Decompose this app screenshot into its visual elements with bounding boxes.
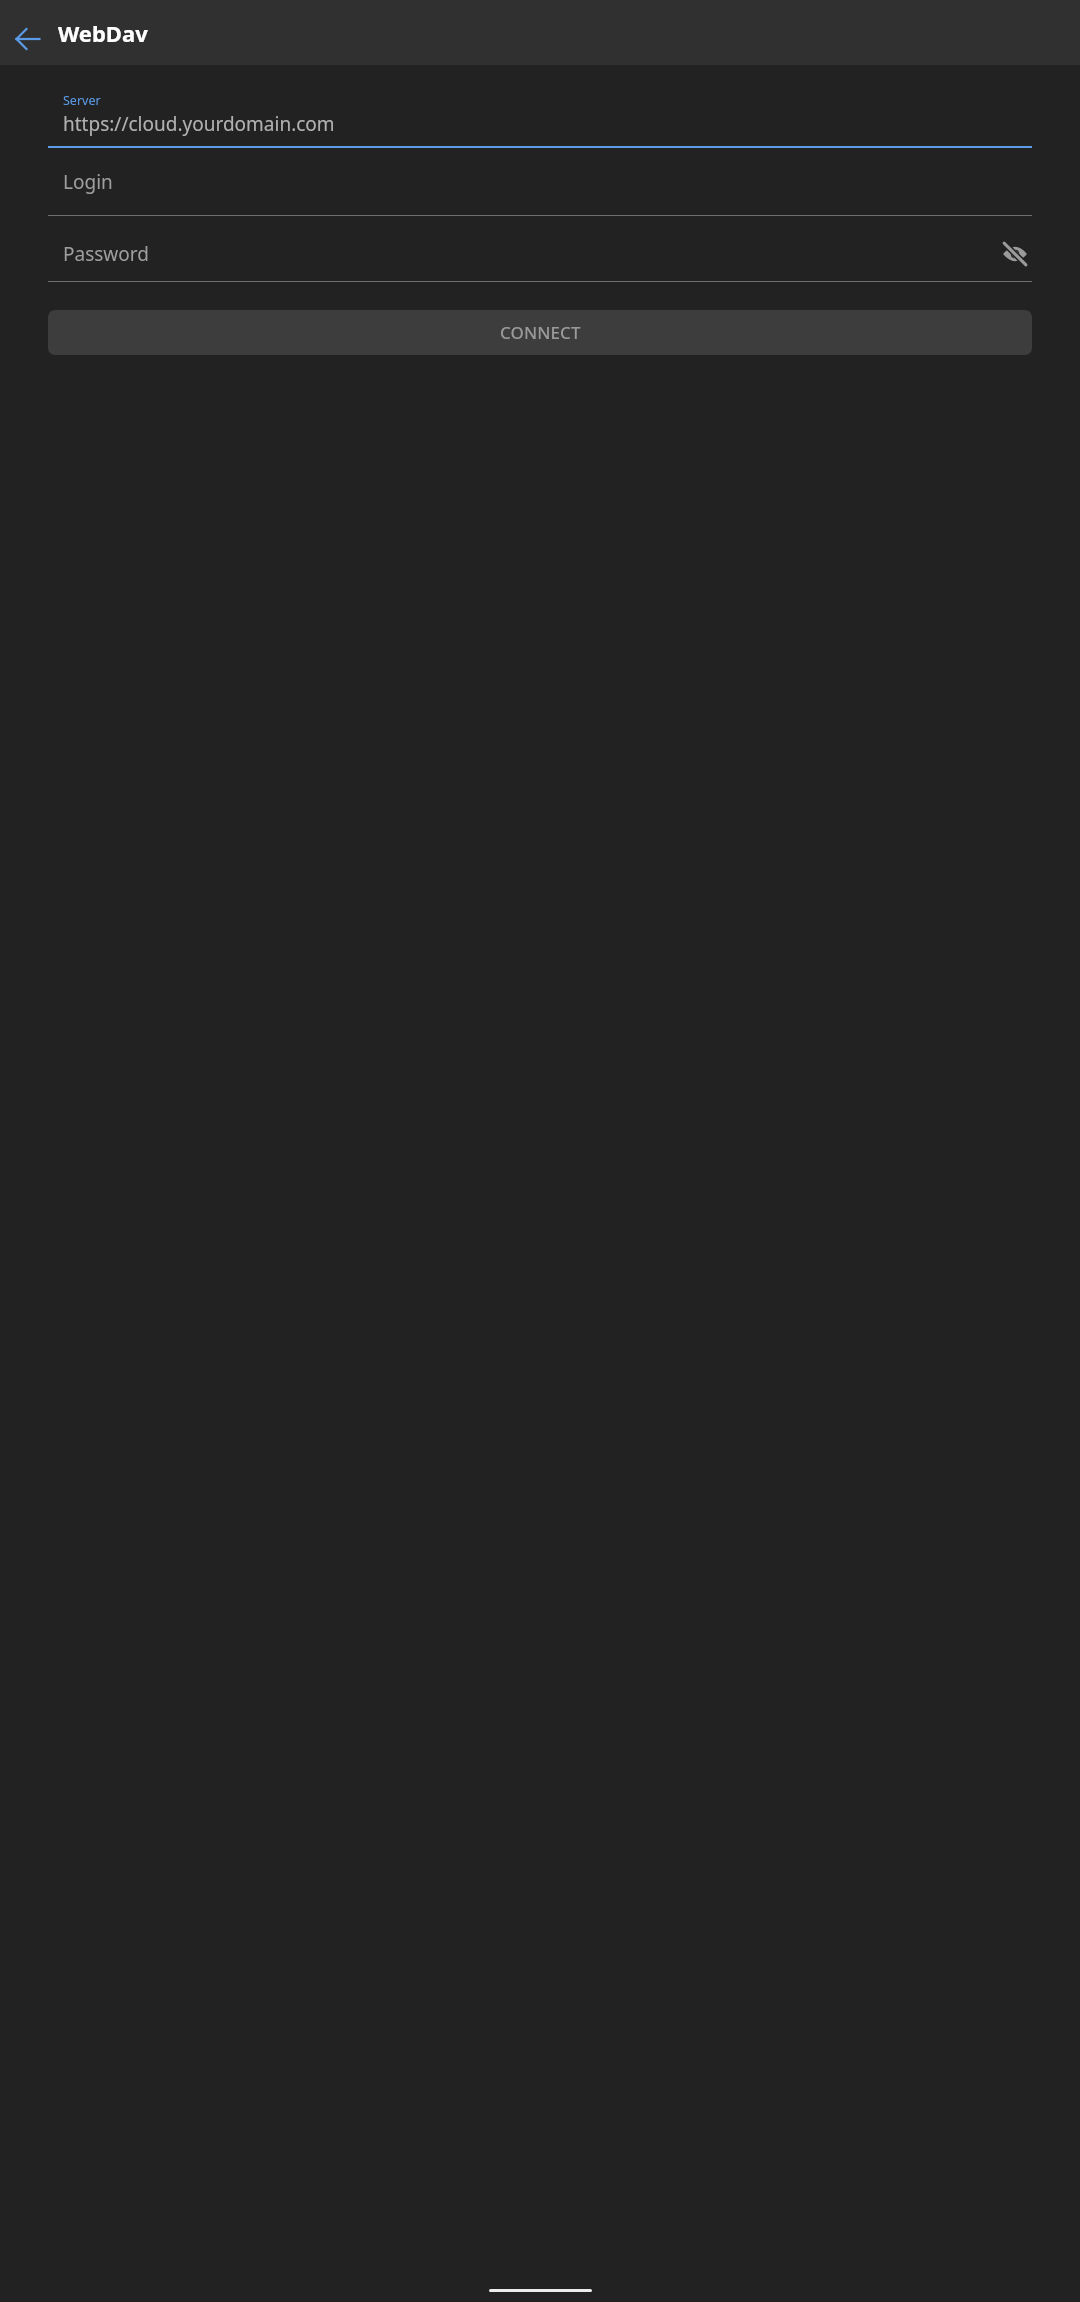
staticText: WebDav xyxy=(58,18,148,48)
button[interactable]: Password xyxy=(48,237,1032,282)
button[interactable]: Server xyxy=(48,92,1032,148)
staticText: https://cloud.yourdomain.com xyxy=(63,111,335,137)
staticText: Server xyxy=(63,92,101,109)
staticText: Password xyxy=(63,241,149,267)
button[interactable]: Login xyxy=(48,169,1032,216)
button[interactable]: CONNECT xyxy=(48,310,1032,355)
button[interactable]: Back xyxy=(4,15,52,63)
button[interactable]: Show password xyxy=(998,237,1032,271)
staticText: Login xyxy=(63,169,113,195)
staticText: CONNECT xyxy=(500,321,581,344)
